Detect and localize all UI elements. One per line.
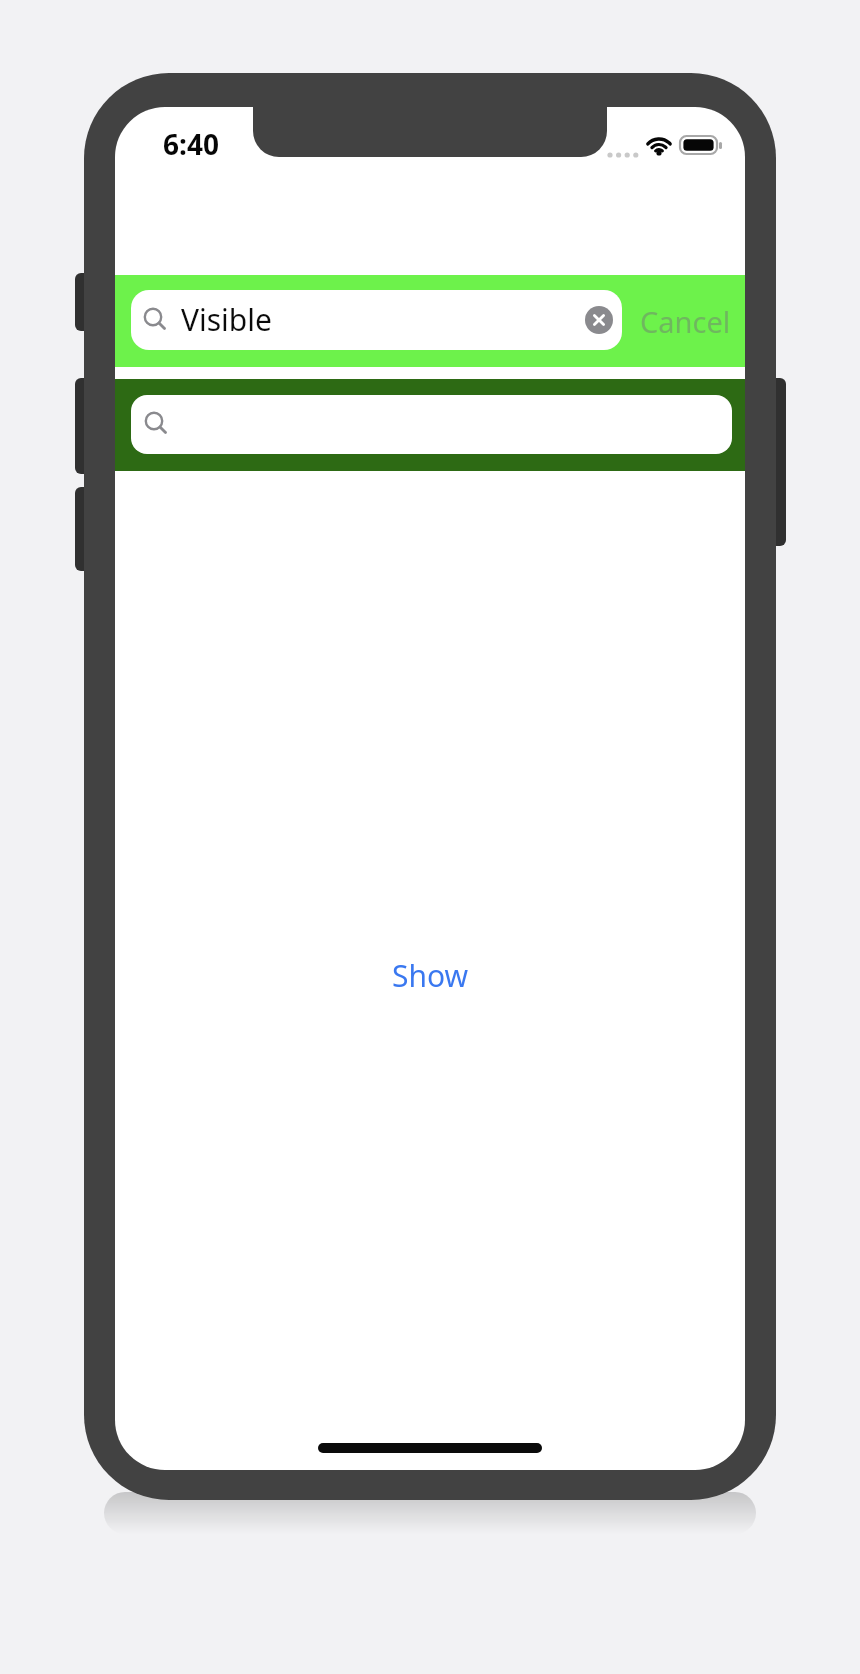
button[interactable] bbox=[131, 395, 732, 454]
staticText: Cancel bbox=[640, 302, 731, 341]
button[interactable]: Show bbox=[392, 955, 469, 996]
button[interactable] bbox=[585, 306, 613, 334]
staticText: Show bbox=[392, 955, 469, 996]
button[interactable]: Visible bbox=[131, 290, 622, 350]
staticText: Visible bbox=[181, 299, 272, 340]
button[interactable]: Cancel bbox=[654, 302, 745, 341]
staticText: 6:40 bbox=[163, 125, 219, 163]
